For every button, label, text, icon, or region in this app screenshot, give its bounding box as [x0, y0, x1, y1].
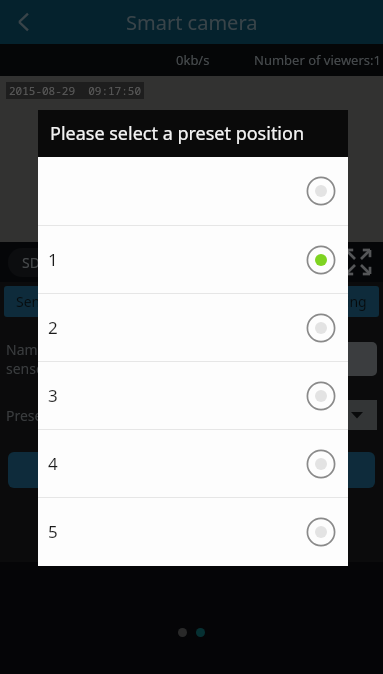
button[interactable]: SD	[8, 248, 54, 277]
staticText: 1	[48, 248, 58, 271]
button[interactable]: 4	[38, 430, 348, 497]
staticText: Smart camera	[126, 9, 258, 36]
staticText: Something	[295, 292, 367, 311]
button[interactable]: 5	[38, 498, 348, 565]
staticText: Preset	[6, 406, 48, 425]
button[interactable]	[257, 342, 377, 376]
staticText: 2015-08-29 09:17:50	[9, 83, 141, 98]
button[interactable]	[38, 157, 348, 225]
staticText: 4	[48, 452, 58, 475]
staticText: 5	[48, 520, 58, 543]
staticText: sensor	[6, 359, 51, 378]
staticText: Sensor	[16, 292, 62, 311]
button[interactable]: Sensor	[4, 286, 74, 317]
staticText: Name of	[6, 340, 63, 359]
staticText: Number of viewers:1	[254, 51, 381, 69]
button[interactable]	[279, 452, 375, 488]
button[interactable]: 1	[38, 226, 348, 293]
button[interactable]: Back	[0, 0, 48, 44]
staticText: 2	[48, 316, 58, 339]
button[interactable]: 2	[38, 294, 348, 361]
staticText: SD	[22, 253, 40, 272]
button[interactable]	[257, 400, 377, 430]
button[interactable]: Something	[283, 286, 379, 317]
staticText: 0kb/s	[176, 51, 210, 69]
button[interactable]: Fullscreen	[343, 247, 373, 277]
button[interactable]	[8, 452, 104, 488]
button[interactable]: 3	[38, 362, 348, 429]
staticText: Please select a preset position	[50, 121, 305, 146]
staticText: 3	[48, 384, 58, 407]
